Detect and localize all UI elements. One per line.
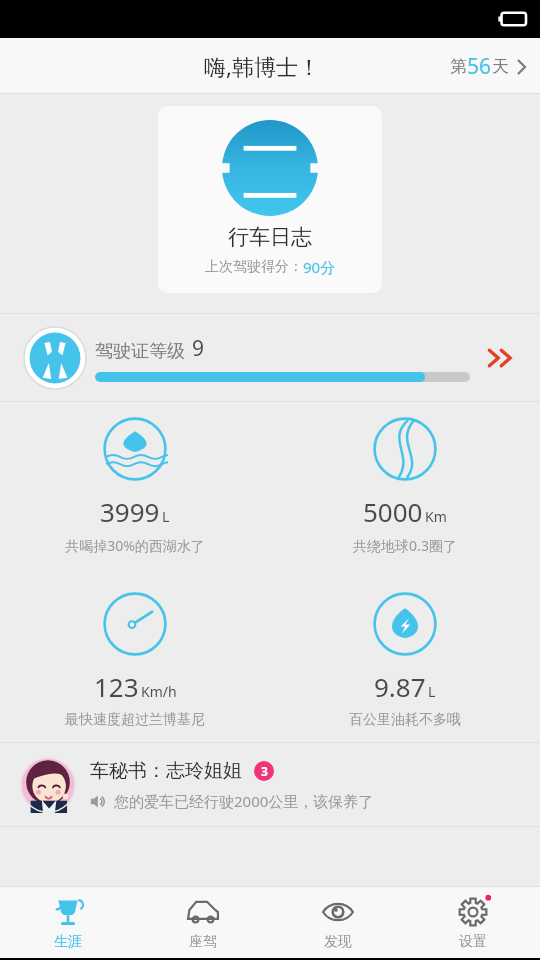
staticText: Km/h: [141, 682, 177, 701]
staticText: 驾驶证等级: [95, 340, 185, 363]
staticText: 发现: [324, 933, 352, 950]
staticText: 您的爱车已经行驶2000公里，该保养了: [114, 791, 374, 811]
button[interactable]: 123: [0, 577, 270, 729]
other: More: [486, 345, 520, 371]
staticText: 9.87: [374, 669, 426, 704]
staticText: 第: [450, 56, 467, 77]
staticText: 56: [467, 52, 492, 81]
button[interactable]: 发现: [270, 887, 405, 958]
button[interactable]: 行车日志: [158, 106, 382, 293]
staticText: 5000: [363, 494, 423, 529]
staticText: 上次驾驶得分：: [205, 258, 303, 276]
staticText: 设置: [459, 933, 487, 950]
staticText: 共喝掉30%的西湖水了: [65, 536, 205, 555]
button[interactable]: 3999: [0, 402, 270, 555]
staticText: 123: [94, 669, 139, 704]
staticText: 3999: [100, 494, 160, 529]
staticText: 行车日志: [228, 224, 312, 250]
staticText: 嗨,韩博士！: [204, 51, 320, 81]
staticText: 最快速度超过兰博基尼: [65, 711, 205, 729]
button[interactable]: 5000: [270, 402, 540, 555]
staticText: L: [428, 682, 436, 701]
button[interactable]: 设置: [405, 887, 540, 958]
staticText: 百公里油耗不多哦: [349, 711, 461, 729]
button[interactable]: 驾驶证等级: [0, 314, 540, 402]
staticText: 生涯: [54, 933, 82, 950]
staticText: 3: [261, 763, 268, 779]
staticText: 90分: [303, 257, 336, 277]
button[interactable]: 生涯: [0, 887, 135, 958]
staticText: Km: [425, 507, 447, 526]
staticText: 车秘书：志玲姐姐: [90, 759, 242, 783]
button[interactable]: 座驾: [135, 887, 270, 958]
button[interactable]: 车秘书：志玲姐姐: [0, 743, 540, 827]
staticText: 9: [192, 334, 205, 363]
staticText: 天: [492, 56, 509, 77]
staticText: 座驾: [189, 933, 217, 950]
staticText: L: [162, 507, 170, 526]
button[interactable]: 第: [436, 44, 540, 89]
button[interactable]: 9.87: [270, 577, 540, 729]
staticText: 共绕地球0.3圈了: [353, 536, 457, 555]
